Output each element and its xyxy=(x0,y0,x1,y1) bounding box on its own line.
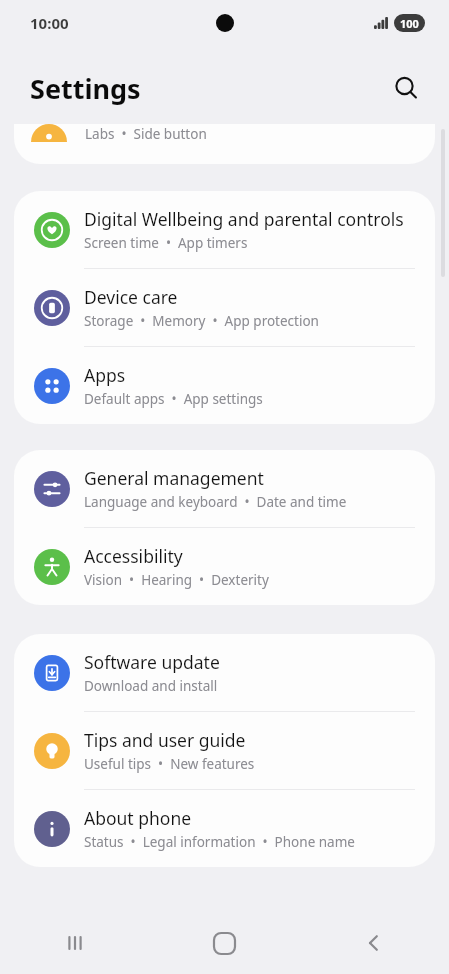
staticText: Software update xyxy=(84,650,220,674)
staticText: Status • Legal information • Phone name xyxy=(84,833,355,851)
staticText: Vision • Hearing • Dexterity xyxy=(84,571,269,589)
button[interactable]: Home xyxy=(149,912,299,974)
staticText: Useful tips • New features xyxy=(84,755,255,773)
staticText: Default apps • App settings xyxy=(84,390,263,408)
button[interactable]: Recent apps xyxy=(0,912,149,974)
staticText: Storage • Memory • App protection xyxy=(84,312,319,330)
button[interactable]: Digital Wellbeing and parental controls xyxy=(14,191,435,268)
staticText: 100 xyxy=(400,16,419,31)
button[interactable]: Accessibility xyxy=(14,528,435,605)
button[interactable]: General management xyxy=(14,450,435,527)
staticText: Device care xyxy=(84,285,178,309)
staticText: Language and keyboard • Date and time xyxy=(84,493,347,511)
button[interactable]: Back xyxy=(299,912,449,974)
staticText: General management xyxy=(84,466,264,490)
staticText: Apps xyxy=(84,363,126,387)
button[interactable]: Software update xyxy=(14,634,435,711)
staticText: Digital Wellbeing and parental controls xyxy=(84,207,404,231)
staticText: Settings xyxy=(30,70,141,107)
button[interactable]: About phone xyxy=(14,790,435,867)
staticText: Screen time • App timers xyxy=(84,234,248,252)
staticText: About phone xyxy=(84,806,192,830)
button[interactable]: Search xyxy=(383,65,429,111)
staticText: Labs • Side button xyxy=(85,125,207,143)
button[interactable]: Tips and user guide xyxy=(14,712,435,789)
staticText: Accessibility xyxy=(84,544,183,568)
staticText: 10:00 xyxy=(30,13,69,33)
button[interactable]: Apps xyxy=(14,347,435,424)
staticText: Download and install xyxy=(84,677,218,695)
button[interactable]: Device care xyxy=(14,269,435,346)
button[interactable]: Labs • Side button xyxy=(14,124,435,164)
staticText: Tips and user guide xyxy=(84,728,246,752)
